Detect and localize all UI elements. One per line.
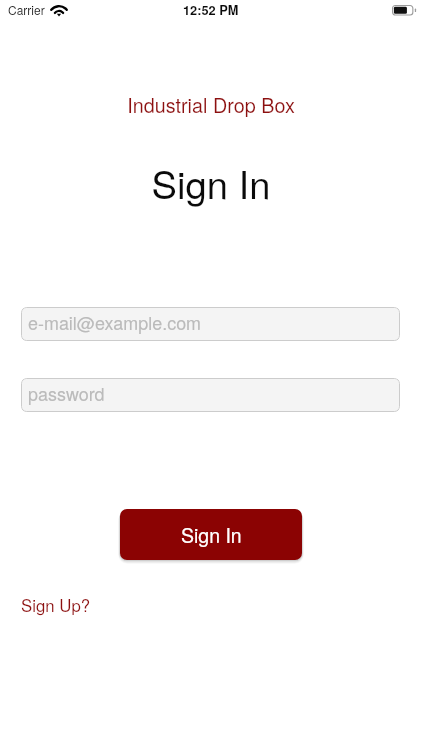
staticText: Sign In bbox=[181, 521, 242, 549]
staticText: 12:52 PM bbox=[183, 1, 239, 19]
staticText: Carrier bbox=[8, 1, 45, 18]
staticText: password bbox=[28, 380, 105, 406]
staticText: Sign Up? bbox=[21, 593, 91, 617]
staticText: e-mail@example.com bbox=[28, 309, 202, 335]
staticText: Industrial Drop Box bbox=[0, 90, 422, 118]
other: Wi-Fi bbox=[51, 4, 67, 16]
button[interactable]: Sign Up? bbox=[21, 593, 91, 617]
button[interactable]: Sign In bbox=[120, 509, 302, 560]
staticText: Sign In bbox=[0, 155, 422, 210]
button[interactable]: e-mail@example.com bbox=[21, 307, 400, 341]
button[interactable]: password bbox=[21, 378, 400, 412]
other: Battery bbox=[392, 5, 416, 16]
